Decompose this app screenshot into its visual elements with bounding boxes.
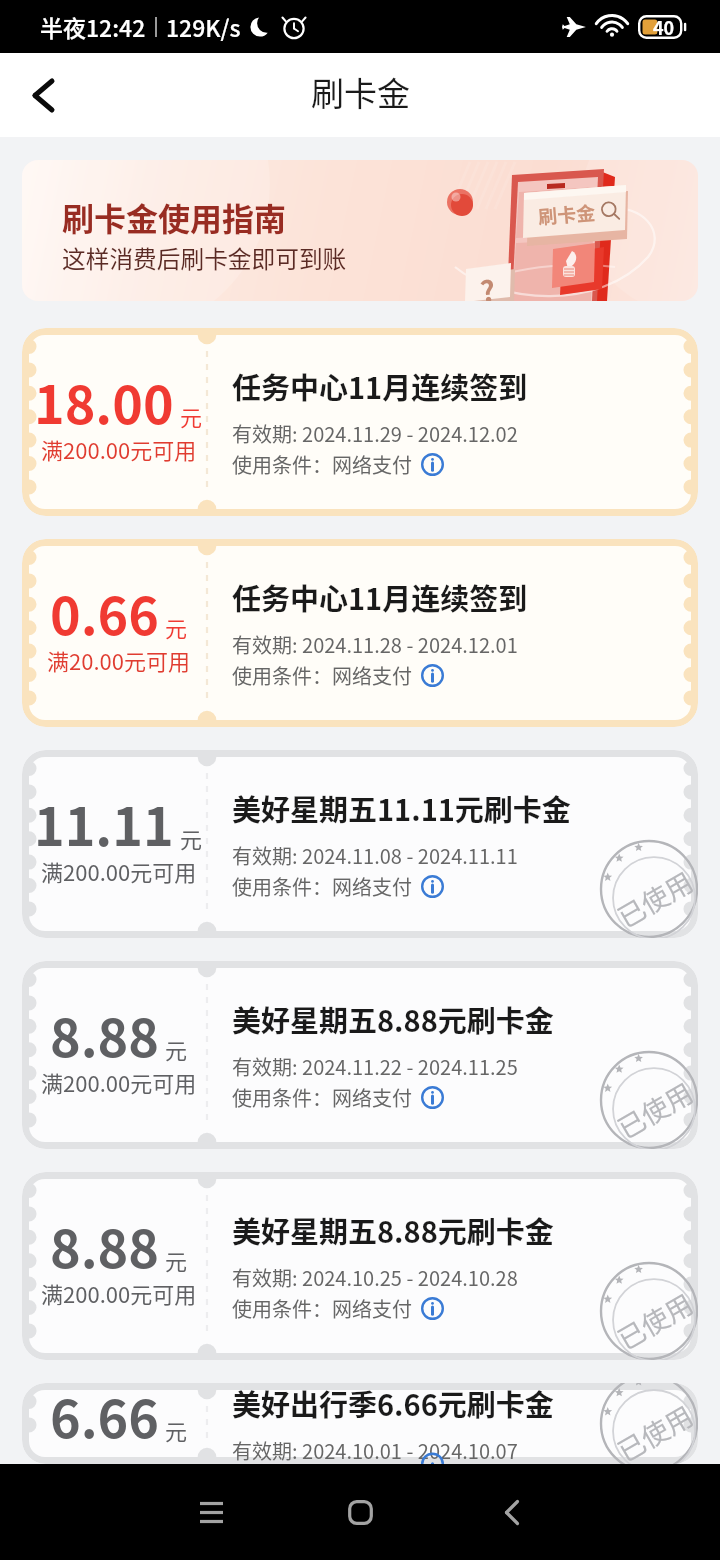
staticText: 40 bbox=[653, 14, 675, 40]
button[interactable]: Back bbox=[9, 61, 77, 129]
button[interactable]: 已使用 bbox=[22, 750, 698, 938]
button[interactable]: 已使用 bbox=[22, 1383, 698, 1464]
staticText: 有效期: 2024.10.01 - 2024.10.07 bbox=[232, 1436, 518, 1464]
staticText: 有效期: 2024.11.29 - 2024.12.02 bbox=[232, 419, 518, 448]
staticText: 刷卡金 bbox=[311, 68, 410, 116]
staticText: ? bbox=[477, 267, 498, 301]
staticText: 元 bbox=[165, 1033, 188, 1065]
staticText: 有效期: 2024.11.08 - 2024.11.11 bbox=[232, 841, 518, 870]
button[interactable]: 18.00 bbox=[22, 328, 698, 516]
staticText: 元 bbox=[180, 822, 203, 854]
staticText: 129K/s bbox=[166, 10, 241, 43]
staticText: 6.66 bbox=[50, 1378, 159, 1453]
staticText: 已使用 bbox=[610, 1072, 698, 1147]
staticText: 美好星期五8.88元刷卡金 bbox=[232, 998, 554, 1040]
staticText: 满200.00元可用 bbox=[41, 855, 197, 887]
staticText: 18.00 bbox=[34, 364, 174, 439]
staticText: 美好出行季6.66元刷卡金 bbox=[232, 1382, 554, 1424]
staticText: 0.66 bbox=[50, 575, 159, 650]
staticText: 美好星期五11.11元刷卡金 bbox=[232, 787, 571, 829]
button[interactable]: Back bbox=[472, 1472, 552, 1552]
staticText: 任务中心11月连续签到 bbox=[232, 576, 528, 618]
staticText: 刷卡金 bbox=[537, 198, 597, 230]
button[interactable]: 0.66 bbox=[22, 539, 698, 727]
staticText: 有效期: 2024.11.22 - 2024.11.25 bbox=[232, 1052, 518, 1081]
staticText: 8.88 bbox=[50, 1208, 159, 1283]
staticText: 11.11 bbox=[34, 786, 174, 861]
staticText: 已使用 bbox=[610, 861, 698, 936]
staticText: 元 bbox=[165, 611, 188, 643]
staticText: 有效期: 2024.10.25 - 2024.10.28 bbox=[232, 1263, 518, 1292]
button[interactable]: 刷卡金使用指南 bbox=[22, 160, 698, 301]
staticText: 满200.00元可用 bbox=[41, 1277, 197, 1309]
staticText: 8.88 bbox=[50, 997, 159, 1072]
staticText: 使用条件：网络支付 bbox=[232, 1294, 412, 1323]
button[interactable]: Recent apps bbox=[171, 1472, 251, 1552]
staticText: 美好星期五8.88元刷卡金 bbox=[232, 1209, 554, 1251]
staticText: 已使用 bbox=[610, 1283, 698, 1358]
staticText: 有效期: 2024.11.28 - 2024.12.01 bbox=[232, 630, 518, 659]
staticText: 这样消费后刷卡金即可到账 bbox=[62, 241, 347, 275]
staticText: 满20.00元可用 bbox=[47, 644, 190, 676]
staticText: 使用条件：网络支付 bbox=[232, 450, 412, 479]
staticText: 满200.00元可用 bbox=[41, 433, 197, 465]
button[interactable]: 已使用 bbox=[22, 1172, 698, 1360]
staticText: 元 bbox=[180, 400, 203, 432]
button[interactable]: Home bbox=[320, 1472, 400, 1552]
staticText: 已使用 bbox=[610, 1395, 698, 1464]
staticText: 满200.00元可用 bbox=[41, 1066, 197, 1098]
staticText: 刷卡金使用指南 bbox=[62, 194, 287, 240]
staticText: 元 bbox=[165, 1414, 188, 1446]
staticText: 使用条件：网络支付 bbox=[232, 661, 412, 690]
staticText: 半夜12:42 bbox=[40, 10, 146, 43]
staticText: 使用条件：网络支付 bbox=[232, 1083, 412, 1112]
button[interactable]: 已使用 bbox=[22, 961, 698, 1149]
staticText: 元 bbox=[165, 1244, 188, 1276]
staticText: 使用条件：网络支付 bbox=[232, 872, 412, 901]
staticText: 任务中心11月连续签到 bbox=[232, 365, 528, 407]
